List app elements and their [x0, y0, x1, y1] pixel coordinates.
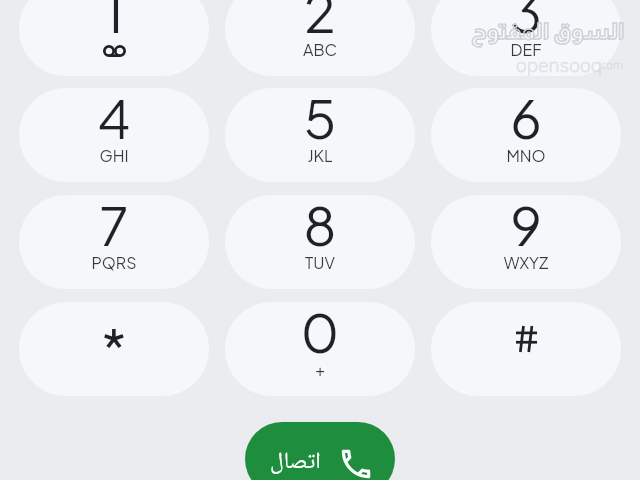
staticText: ABC — [225, 39, 415, 59]
staticText: 0 — [225, 302, 415, 365]
button[interactable]: Pound — [431, 302, 621, 396]
button[interactable]: 9 — [431, 195, 621, 289]
button[interactable]: * — [19, 302, 209, 396]
staticText: 2 — [225, 0, 415, 45]
staticText: .com — [599, 57, 624, 73]
button[interactable]: 3 — [431, 0, 621, 76]
other: Voicemail — [103, 45, 126, 57]
staticText: 8 — [225, 195, 415, 258]
staticText: 4 — [19, 88, 209, 151]
staticText: WXYZ — [431, 252, 621, 272]
staticText: 5 — [225, 88, 415, 151]
staticText: DEF — [431, 39, 621, 59]
button[interactable]: 8 — [225, 195, 415, 289]
button[interactable]: 4 — [19, 88, 209, 182]
button[interactable]: 1 — [19, 0, 209, 76]
button[interactable]: 2 — [225, 0, 415, 76]
button[interactable]: 6 — [431, 88, 621, 182]
staticText: JKL — [225, 145, 415, 165]
staticText: 6 — [431, 88, 621, 151]
button[interactable]: 0 — [225, 302, 415, 396]
staticText: 1 — [19, 0, 209, 45]
staticText: TUV — [225, 252, 415, 272]
staticText: اتصال — [270, 443, 321, 480]
staticText: + — [225, 359, 415, 379]
staticText: 9 — [431, 195, 621, 258]
staticText: 3 — [431, 0, 621, 45]
button[interactable]: اتصال — [245, 422, 395, 480]
staticText: opensooq — [516, 52, 603, 79]
button[interactable]: 5 — [225, 88, 415, 182]
button[interactable]: 7 — [19, 195, 209, 289]
staticText: السوق المفتوح — [471, 19, 625, 44]
staticText: * — [19, 313, 209, 380]
staticText: PQRS — [19, 252, 209, 272]
staticText: MNO — [431, 145, 621, 165]
staticText: GHI — [19, 145, 209, 165]
staticText: 7 — [19, 195, 209, 258]
